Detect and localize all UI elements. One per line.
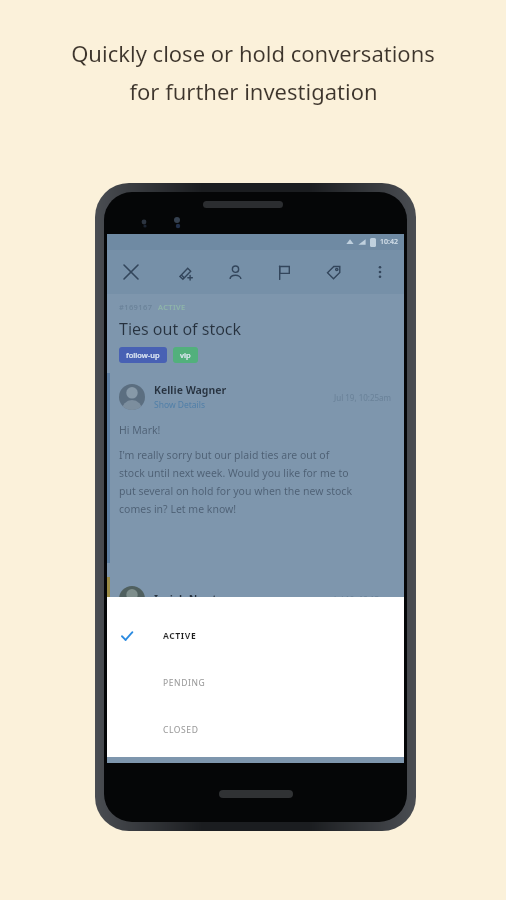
button[interactable]: vip	[173, 347, 198, 363]
button[interactable]: Avatar	[119, 586, 145, 612]
staticText: put several on hold for you when the new…	[119, 484, 353, 498]
button[interactable]: Add note	[172, 258, 200, 286]
button[interactable]: Assign user	[221, 258, 249, 286]
staticText: PENDING	[163, 677, 206, 689]
staticText: Quickly close or hold conversations	[71, 38, 435, 68]
button[interactable]: Show Details	[154, 399, 206, 411]
button[interactable]: Avatar	[119, 384, 145, 410]
staticText: follow-up	[126, 350, 160, 360]
button[interactable]: Flag	[270, 258, 298, 286]
staticText: vip	[180, 350, 191, 360]
button[interactable]: follow-up	[119, 347, 167, 363]
button[interactable]: More options	[366, 258, 394, 286]
staticText: Jul 19, 10:25am	[334, 392, 392, 403]
staticText: comes in? Let me know!	[119, 502, 237, 516]
staticText: Kellie Wagner	[154, 383, 227, 397]
staticText: stock until next week. Would you like fo…	[119, 466, 349, 480]
staticText: Jul 19, 10:15am	[334, 594, 392, 605]
button[interactable]: PENDING	[107, 666, 404, 699]
button[interactable]: CLOSED	[107, 713, 404, 746]
button[interactable]: Tags	[319, 258, 347, 286]
button[interactable]: Close	[117, 258, 145, 286]
staticText: Ties out of stock	[119, 318, 242, 340]
staticText: #169167	[119, 302, 153, 312]
staticText: for further investigation	[129, 76, 378, 106]
staticText: Hi Mark!	[119, 423, 161, 437]
staticText: ACTIVE	[163, 630, 197, 642]
staticText: 10:42	[380, 237, 398, 247]
staticText: I'm really sorry but our plaid ties are …	[119, 448, 330, 462]
staticText: Isaiah Newton	[154, 592, 334, 606]
staticText: ACTIVE	[158, 302, 186, 312]
button[interactable]: ACTIVE	[107, 619, 404, 652]
staticText: Show Details	[154, 399, 206, 411]
staticText: CLOSED	[163, 724, 199, 736]
